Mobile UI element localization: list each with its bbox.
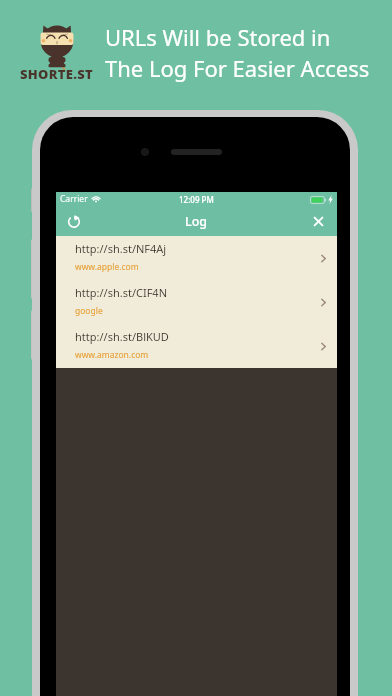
button[interactable]: http://sh.st/BlKUD <box>56 324 337 368</box>
button[interactable]: Refresh <box>61 208 87 234</box>
staticText: http://sh.st/BlKUD <box>75 329 169 344</box>
staticText: http://sh.st/CIF4N <box>75 285 168 300</box>
staticText: The Log For Easier Access <box>105 53 370 83</box>
staticText: www.amazon.com <box>75 349 149 361</box>
staticText: SHORTE.ST <box>20 65 94 83</box>
staticText: http://sh.st/NF4Aj <box>75 241 167 256</box>
staticText: Carrier <box>60 193 88 205</box>
button[interactable]: Close <box>306 208 332 234</box>
staticText: Log <box>185 213 208 230</box>
button[interactable]: http://sh.st/NF4Aj <box>56 236 337 280</box>
staticText: google <box>75 305 103 317</box>
staticText: URLs Will be Stored in <box>105 22 331 52</box>
staticText: www.apple.com <box>75 261 139 273</box>
button[interactable]: http://sh.st/CIF4N <box>56 280 337 324</box>
staticText: 12:09 PM <box>179 194 214 205</box>
